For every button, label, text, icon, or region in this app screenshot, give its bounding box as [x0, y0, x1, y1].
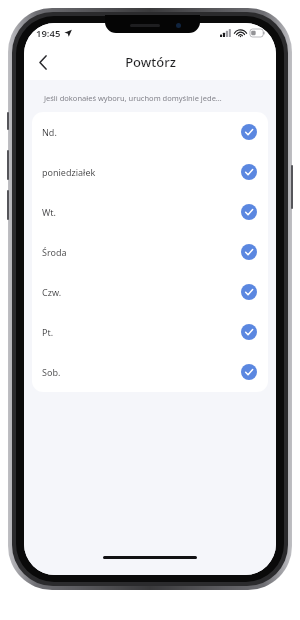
button[interactable]: Środa: [32, 232, 268, 272]
staticText: Pt.: [42, 326, 54, 338]
button[interactable]: Czw.: [32, 272, 268, 312]
staticText: Środa: [42, 246, 67, 258]
staticText: Jeśli dokonałeś wyboru, uruchom domyślni…: [44, 93, 222, 103]
staticText: Wt.: [42, 206, 57, 218]
button[interactable]: Pt.: [32, 312, 268, 352]
button[interactable]: Sob.: [32, 352, 268, 392]
staticText: poniedziałek: [42, 166, 96, 178]
staticText: 19:45: [36, 27, 61, 40]
staticText: Czw.: [42, 286, 62, 298]
button[interactable]: Back: [28, 47, 58, 77]
button[interactable]: Nd.: [32, 112, 268, 152]
staticText: Nd.: [42, 126, 57, 138]
staticText: Sob.: [42, 366, 61, 378]
button[interactable]: poniedziałek: [32, 152, 268, 192]
staticText: Powtórz: [125, 53, 176, 71]
button[interactable]: Wt.: [32, 192, 268, 232]
